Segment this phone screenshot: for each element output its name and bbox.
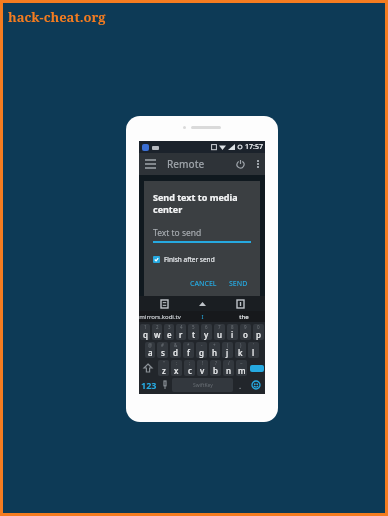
staticText: 9 <box>244 324 247 330</box>
staticText: z <box>162 365 166 376</box>
staticText: 3 <box>168 324 171 330</box>
button[interactable]: 7 <box>214 324 225 340</box>
staticText: 4 <box>180 324 183 330</box>
staticText: 2 <box>156 324 159 330</box>
staticText: ? <box>215 360 217 366</box>
button[interactable]: : <box>171 360 182 376</box>
button[interactable]: Space <box>172 378 233 392</box>
staticText: 7 <box>218 324 221 330</box>
button[interactable]: & <box>170 342 181 358</box>
button[interactable]: / <box>223 360 234 376</box>
button[interactable]: - <box>196 342 207 358</box>
button[interactable]: Emoji <box>247 378 265 392</box>
staticText: i <box>231 329 234 340</box>
button[interactable]: 3 <box>164 324 174 340</box>
staticText: Send text to media center <box>153 191 251 215</box>
staticText: * <box>187 342 190 348</box>
staticText: ) <box>240 342 242 348</box>
button[interactable]: " <box>158 360 169 376</box>
staticText: I <box>201 313 204 321</box>
button[interactable]: 8 <box>227 324 238 340</box>
button[interactable]: ! <box>197 360 208 376</box>
button[interactable]: 2 <box>152 324 162 340</box>
button[interactable]: + <box>209 342 220 358</box>
staticText: " <box>163 360 165 366</box>
button[interactable]: Power <box>229 153 251 175</box>
button[interactable]: Menu <box>139 153 161 175</box>
button[interactable]: 1 <box>140 324 150 340</box>
staticText: ~ <box>240 360 243 366</box>
button[interactable]: I <box>181 311 223 322</box>
staticText: r <box>179 329 183 340</box>
staticText: j <box>226 347 229 358</box>
staticText: hack-cheat.org <box>8 8 106 26</box>
staticText: - <box>201 342 203 348</box>
staticText: p <box>256 329 261 340</box>
button[interactable]: 9 <box>240 324 251 340</box>
button[interactable]: the <box>223 311 265 322</box>
staticText: w <box>154 329 161 340</box>
staticText: e <box>167 329 172 340</box>
button[interactable]: ) <box>235 342 246 358</box>
staticText: d <box>173 347 178 358</box>
staticText: ( <box>227 342 229 348</box>
staticText: k <box>238 347 243 358</box>
button[interactable]: CANCEL <box>187 277 220 291</box>
button[interactable]: 123 <box>139 378 158 392</box>
staticText: Finish after send <box>164 255 215 264</box>
button[interactable]: # <box>157 342 168 358</box>
button[interactable]: Finish after send <box>153 255 215 264</box>
staticText: / <box>228 360 230 366</box>
staticText: & <box>174 342 178 348</box>
button[interactable]: Backspace <box>249 361 264 375</box>
button[interactable]: ~ <box>236 360 247 376</box>
button[interactable]: mirrors.kodi.tv <box>139 311 181 322</box>
staticText: y <box>204 329 209 340</box>
staticText: s <box>161 347 165 358</box>
button[interactable]: ; <box>184 360 195 376</box>
staticText: ' <box>253 342 255 348</box>
staticText: 1 <box>144 324 147 330</box>
staticText: 123 <box>141 379 157 391</box>
button[interactable]: Info <box>227 296 253 311</box>
staticText: SEND <box>229 279 248 289</box>
button[interactable]: Clipboard <box>151 296 177 311</box>
button[interactable]: ( <box>222 342 233 358</box>
staticText: o <box>243 329 248 340</box>
button[interactable]: * <box>183 342 194 358</box>
staticText: @ <box>148 342 153 348</box>
staticText: 0 <box>257 324 260 330</box>
button[interactable]: Shift <box>139 360 157 376</box>
button[interactable]: More options <box>251 153 265 175</box>
staticText: h <box>212 347 218 358</box>
staticText: a <box>148 347 153 358</box>
staticText: t <box>192 329 196 340</box>
staticText: Text to send <box>153 227 202 239</box>
button[interactable]: 6 <box>201 324 212 340</box>
staticText: the <box>239 313 249 321</box>
button[interactable]: Comma and voice input <box>158 378 171 392</box>
staticText: SwiftKey <box>193 382 213 389</box>
staticText: 6 <box>205 324 208 330</box>
button[interactable]: 0 <box>253 324 264 340</box>
staticText: b <box>213 365 218 376</box>
button[interactable]: ' <box>248 342 259 358</box>
staticText: 17:57 <box>245 142 263 152</box>
button[interactable]: . <box>234 378 247 392</box>
button[interactable]: ? <box>210 360 221 376</box>
staticText: v <box>200 365 205 376</box>
staticText: ; <box>189 360 191 366</box>
staticText: u <box>217 329 223 340</box>
staticText: ! <box>202 360 204 366</box>
button[interactable]: 5 <box>188 324 199 340</box>
button[interactable]: SEND <box>226 277 251 291</box>
staticText: 5 <box>192 324 195 330</box>
staticText: # <box>161 342 164 348</box>
staticText: l <box>252 347 255 358</box>
staticText: Remote <box>167 157 205 171</box>
staticText: : <box>176 360 178 366</box>
button[interactable]: 4 <box>176 324 186 340</box>
button[interactable]: Expand <box>189 296 215 311</box>
button[interactable]: @ <box>145 342 155 358</box>
staticText: q <box>143 329 148 340</box>
